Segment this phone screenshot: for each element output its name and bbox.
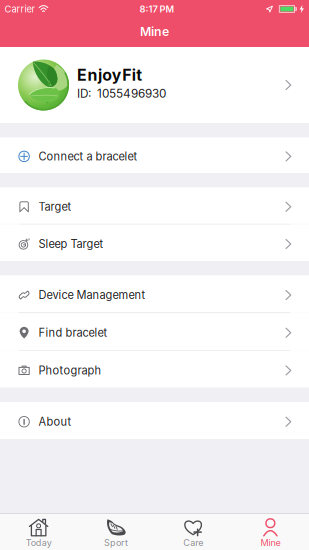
button[interactable]: About	[0, 402, 309, 439]
button[interactable]: Care	[154, 513, 232, 550]
staticText: Find bracelet	[38, 326, 107, 339]
button[interactable]: Photograph	[0, 351, 309, 388]
staticText: Today	[26, 537, 52, 548]
staticText: Target	[38, 200, 71, 213]
staticText: ID: 1055496930	[77, 86, 166, 101]
button[interactable]: Today	[0, 513, 77, 550]
staticText: About	[38, 415, 71, 428]
button[interactable]: Connect a bracelet	[0, 137, 309, 173]
staticText: Care	[183, 537, 203, 548]
button[interactable]: Sport	[77, 513, 154, 550]
staticText: Connect a bracelet	[38, 150, 137, 163]
staticText: 8:17 PM	[140, 3, 175, 15]
button[interactable]: Device Management	[0, 275, 309, 312]
staticText: Mine	[140, 24, 169, 39]
staticText: EnjoyFit	[77, 65, 142, 84]
button[interactable]: Mine	[232, 513, 309, 550]
staticText: Photograph	[38, 364, 101, 377]
staticText: Carrier	[4, 3, 35, 15]
staticText: Sport	[104, 537, 128, 548]
button[interactable]: Find bracelet	[0, 313, 309, 350]
staticText: Mine	[260, 537, 280, 548]
button[interactable]: EnjoyFit	[0, 47, 309, 123]
staticText: Device Management	[38, 288, 145, 302]
staticText: Sleep Target	[38, 237, 103, 251]
button[interactable]: Sleep Target	[0, 225, 309, 261]
button[interactable]: Target	[0, 187, 309, 224]
